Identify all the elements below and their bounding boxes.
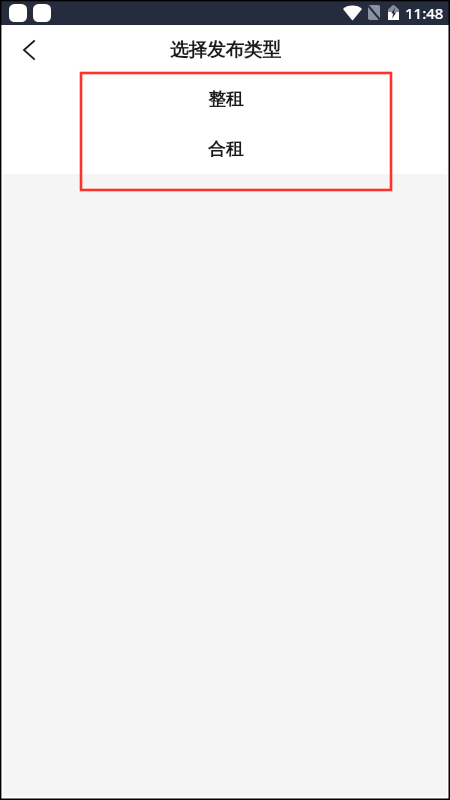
button[interactable]: Back bbox=[5, 26, 53, 74]
staticText: 整租 bbox=[208, 88, 243, 110]
staticText: 11:48 bbox=[405, 3, 444, 23]
staticText: 选择发布类型 bbox=[170, 38, 281, 61]
button[interactable]: 合租 bbox=[0, 124, 450, 174]
staticText: 合租 bbox=[208, 138, 243, 160]
button[interactable]: 整租 bbox=[0, 74, 450, 124]
